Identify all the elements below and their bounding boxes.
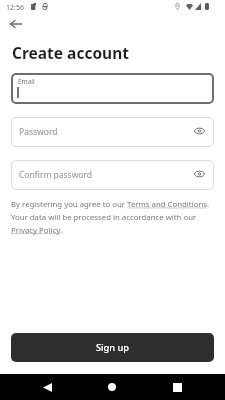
staticText: Confirm password	[19, 169, 93, 181]
staticText: Sign up	[96, 341, 129, 354]
button[interactable]: Home	[100, 375, 124, 399]
staticText: Email	[18, 77, 35, 86]
button[interactable]: Confirm password	[11, 160, 214, 190]
staticText: Password	[19, 126, 58, 138]
button[interactable]: Back	[7, 15, 25, 33]
staticText: By registering you agree to our Terms an…	[11, 199, 217, 235]
button[interactable]: Email	[11, 73, 214, 104]
button[interactable]: Recent apps	[165, 375, 189, 399]
button[interactable]: Show password	[191, 123, 207, 139]
button[interactable]: Show password	[191, 166, 207, 182]
button[interactable]: Sign up	[11, 333, 214, 362]
button[interactable]: Password	[11, 117, 214, 147]
button[interactable]: Back	[35, 375, 59, 399]
staticText: Create account	[12, 42, 129, 63]
staticText: 12:56	[6, 3, 24, 13]
